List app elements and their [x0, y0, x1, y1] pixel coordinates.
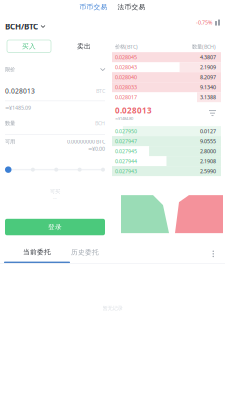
staticText: 登录	[48, 223, 62, 231]
button[interactable]: 买入	[7, 40, 51, 52]
staticText: 8.2097	[200, 74, 216, 81]
button[interactable]: 历史委托	[71, 248, 99, 263]
staticText: 9.0555	[200, 138, 216, 145]
staticText: 当前委托	[23, 248, 51, 256]
button[interactable]: BCH/BTC	[5, 22, 45, 31]
staticText: 数量	[5, 120, 15, 127]
staticText: 2.1909	[200, 64, 216, 71]
staticText: 历史委托	[71, 248, 99, 256]
staticText: 0.028045	[115, 54, 137, 61]
staticText: 法币交易	[117, 3, 145, 11]
staticText: ≈¥0.00	[88, 145, 105, 152]
staticText: 限价	[5, 66, 15, 73]
staticText: 币币交易	[79, 3, 107, 11]
staticText: 0.028013	[5, 87, 35, 95]
staticText: 0.028043	[115, 64, 137, 71]
staticText: 买入	[22, 42, 36, 50]
staticText: 0.028040	[115, 74, 137, 81]
button[interactable]: More	[208, 250, 218, 263]
button[interactable]: Depth settings	[209, 110, 216, 117]
staticText: 2.1908	[200, 158, 216, 165]
staticText: BCH	[95, 120, 105, 127]
staticText: 0.027945	[115, 148, 137, 155]
staticText: 4.3807	[200, 54, 216, 61]
staticText: 卖出	[77, 42, 91, 50]
staticText: 可用	[5, 138, 15, 145]
staticText: 9.1340	[200, 84, 216, 91]
button[interactable]: 法币交易	[112, 3, 150, 11]
staticText: 0.027950	[115, 128, 137, 135]
staticText: 0.00000000 BTC	[67, 138, 105, 145]
staticText: 0.027944	[115, 158, 137, 165]
staticText: 数量(BCH)	[192, 43, 216, 50]
button[interactable]: 当前委托	[4, 248, 70, 263]
staticText: 0.027947	[115, 138, 137, 145]
button[interactable]: 卖出	[68, 40, 100, 52]
button[interactable]: 币币交易	[74, 3, 112, 11]
staticText: --	[53, 195, 57, 202]
button[interactable]: 登录	[5, 219, 105, 235]
staticText: BCH/BTC	[5, 21, 38, 32]
staticText: 可买	[50, 188, 60, 195]
staticText: 价格(BTC)	[115, 43, 138, 50]
staticText: -0.75%	[196, 19, 212, 26]
staticText: 0.028033	[115, 84, 137, 91]
staticText: ≈¥1484.80	[115, 116, 133, 121]
staticText: 0.027943	[115, 168, 137, 175]
staticText: 3.1388	[200, 94, 216, 101]
staticText: 0.028013	[115, 105, 152, 116]
staticText: 0.0127	[200, 128, 216, 135]
staticText: 2.8000	[200, 148, 216, 155]
button[interactable]: Chart	[215, 19, 220, 25]
staticText: ≈¥1485.09	[5, 104, 31, 111]
staticText: 0.028017	[115, 94, 137, 101]
staticText: BTC	[96, 87, 105, 95]
staticText: 2.5990	[200, 168, 216, 175]
staticText: 暂无记录	[102, 305, 122, 312]
